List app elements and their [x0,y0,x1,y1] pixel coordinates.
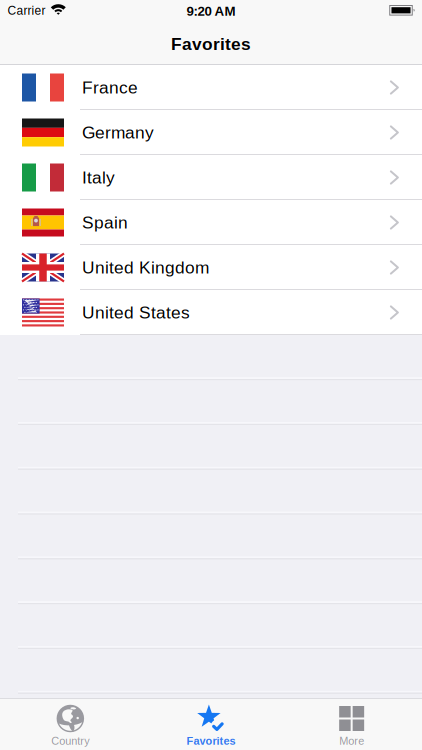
button[interactable]: Germany [0,110,422,155]
staticText: Germany [82,123,154,142]
staticText: United Kingdom [82,258,209,277]
button[interactable]: France [0,65,422,110]
staticText: Carrier [7,4,45,17]
button[interactable]: Favorites [141,698,281,750]
staticText: Country [51,735,89,747]
staticText: Favorites [171,35,251,53]
staticText: More [339,735,364,747]
button[interactable]: Italy [0,155,422,200]
staticText: Spain [82,213,128,232]
staticText: Italy [82,168,115,187]
staticText: United States [82,303,190,322]
staticText: 9:20 AM [186,4,235,18]
button[interactable]: United States [0,290,422,335]
staticText: France [82,78,138,97]
button[interactable]: Country [0,698,141,750]
button[interactable]: Spain [0,200,422,245]
button[interactable]: More [281,698,422,750]
button[interactable]: United Kingdom [0,245,422,290]
staticText: Favorites [186,735,235,747]
